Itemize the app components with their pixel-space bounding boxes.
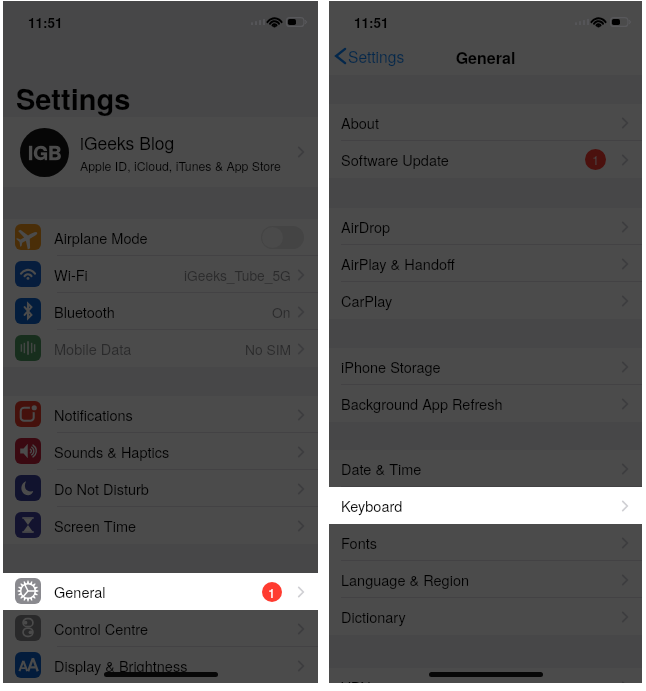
staticText: iPhone Storage xyxy=(341,356,622,377)
button[interactable]: Keyboard xyxy=(329,487,642,524)
button[interactable]: Background App Refresh xyxy=(329,385,642,422)
staticText: Background App Refresh xyxy=(341,393,622,414)
staticText: Keyboard xyxy=(341,495,622,516)
staticText: Settings xyxy=(348,45,405,67)
staticText: Control Centre xyxy=(54,618,298,639)
staticText: Do Not Disturb xyxy=(54,478,298,499)
button[interactable]: Airplane Mode xyxy=(3,219,318,256)
button[interactable]: Mobile Data xyxy=(3,330,318,367)
staticText: iGeeks Blog xyxy=(80,130,175,155)
staticText: About xyxy=(341,112,622,133)
staticText: iGB xyxy=(28,139,62,166)
button[interactable]: Screen Time xyxy=(3,507,318,544)
staticText: Apple ID, iCloud, iTunes & App Store xyxy=(80,157,281,175)
button[interactable]: Bluetooth xyxy=(3,293,318,330)
staticText: Sounds & Haptics xyxy=(54,441,298,462)
button[interactable]: iPhone Storage xyxy=(329,348,642,385)
staticText: Screen Time xyxy=(54,515,298,536)
button[interactable]: Notifications xyxy=(3,396,318,433)
button[interactable]: About xyxy=(329,104,642,141)
staticText: CarPlay xyxy=(341,290,622,311)
button[interactable]: VPN xyxy=(329,668,642,683)
staticText: Date & Time xyxy=(341,458,622,479)
button[interactable]: CarPlay xyxy=(329,282,642,319)
button[interactable]: Fonts xyxy=(329,524,642,561)
staticText: Airplane Mode xyxy=(54,227,261,248)
staticText: Software Update xyxy=(341,149,585,170)
staticText: Display & Brightness xyxy=(54,655,298,676)
button[interactable]: Date & Time xyxy=(329,450,642,487)
staticText: Dictionary xyxy=(341,606,622,627)
staticText: General xyxy=(54,581,262,602)
button[interactable]: Do Not Disturb xyxy=(3,470,318,507)
staticText: Language & Region xyxy=(341,569,622,590)
button[interactable]: Dictionary xyxy=(329,598,642,635)
staticText: iGeeks_Tube_5G xyxy=(184,265,291,285)
staticText: General xyxy=(329,46,642,69)
button[interactable]: Software Update xyxy=(329,141,642,178)
staticText: Notifications xyxy=(54,404,298,425)
staticText: Settings xyxy=(16,77,131,119)
button[interactable]: Control Centre xyxy=(3,610,318,647)
staticText: 1 xyxy=(268,583,276,602)
staticText: No SIM xyxy=(245,339,291,359)
button[interactable]: AirPlay & Handoff xyxy=(329,245,642,282)
staticText: 11:51 xyxy=(28,13,63,32)
staticText: Fonts xyxy=(341,532,622,553)
button[interactable]: Settings xyxy=(331,42,409,70)
staticText: AirDrop xyxy=(341,216,622,237)
button[interactable]: General xyxy=(3,573,318,610)
staticText: AirPlay & Handoff xyxy=(341,253,622,274)
staticText: On xyxy=(272,302,291,322)
staticText: Bluetooth xyxy=(54,301,272,322)
staticText: VPN xyxy=(341,676,523,683)
staticText: Wi-Fi xyxy=(54,264,184,285)
staticText: 1 xyxy=(592,150,600,169)
button[interactable]: AirDrop xyxy=(329,208,642,245)
button[interactable]: iGB xyxy=(3,117,318,187)
button[interactable]: Language & Region xyxy=(329,561,642,598)
button[interactable]: Wi-Fi xyxy=(3,256,318,293)
button[interactable]: Display & Brightness xyxy=(3,647,318,683)
button[interactable]: Sounds & Haptics xyxy=(3,433,318,470)
staticText: Mobile Data xyxy=(54,338,245,359)
staticText: 11:51 xyxy=(354,13,389,32)
